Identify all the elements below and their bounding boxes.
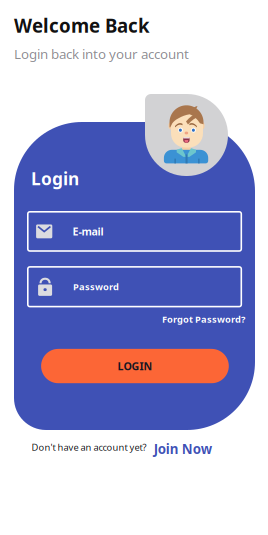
staticText: LOGIN <box>117 359 152 373</box>
staticText: E-mail <box>72 224 103 238</box>
staticText: Password <box>73 281 119 293</box>
button[interactable]: Forgot Password? <box>162 313 245 325</box>
staticText: Don't have an account yet? <box>31 441 146 453</box>
button[interactable]: LOGIN <box>41 349 229 383</box>
staticText: Login <box>31 167 79 190</box>
button[interactable]: Join Now <box>154 440 212 458</box>
button[interactable]: E-mail <box>28 212 241 251</box>
staticText: Join Now <box>154 440 212 458</box>
button[interactable]: Password <box>28 267 241 307</box>
staticText: Welcome Back <box>14 13 150 38</box>
staticText: Forgot Password? <box>162 313 245 325</box>
staticText: Login back into your account <box>14 45 189 63</box>
